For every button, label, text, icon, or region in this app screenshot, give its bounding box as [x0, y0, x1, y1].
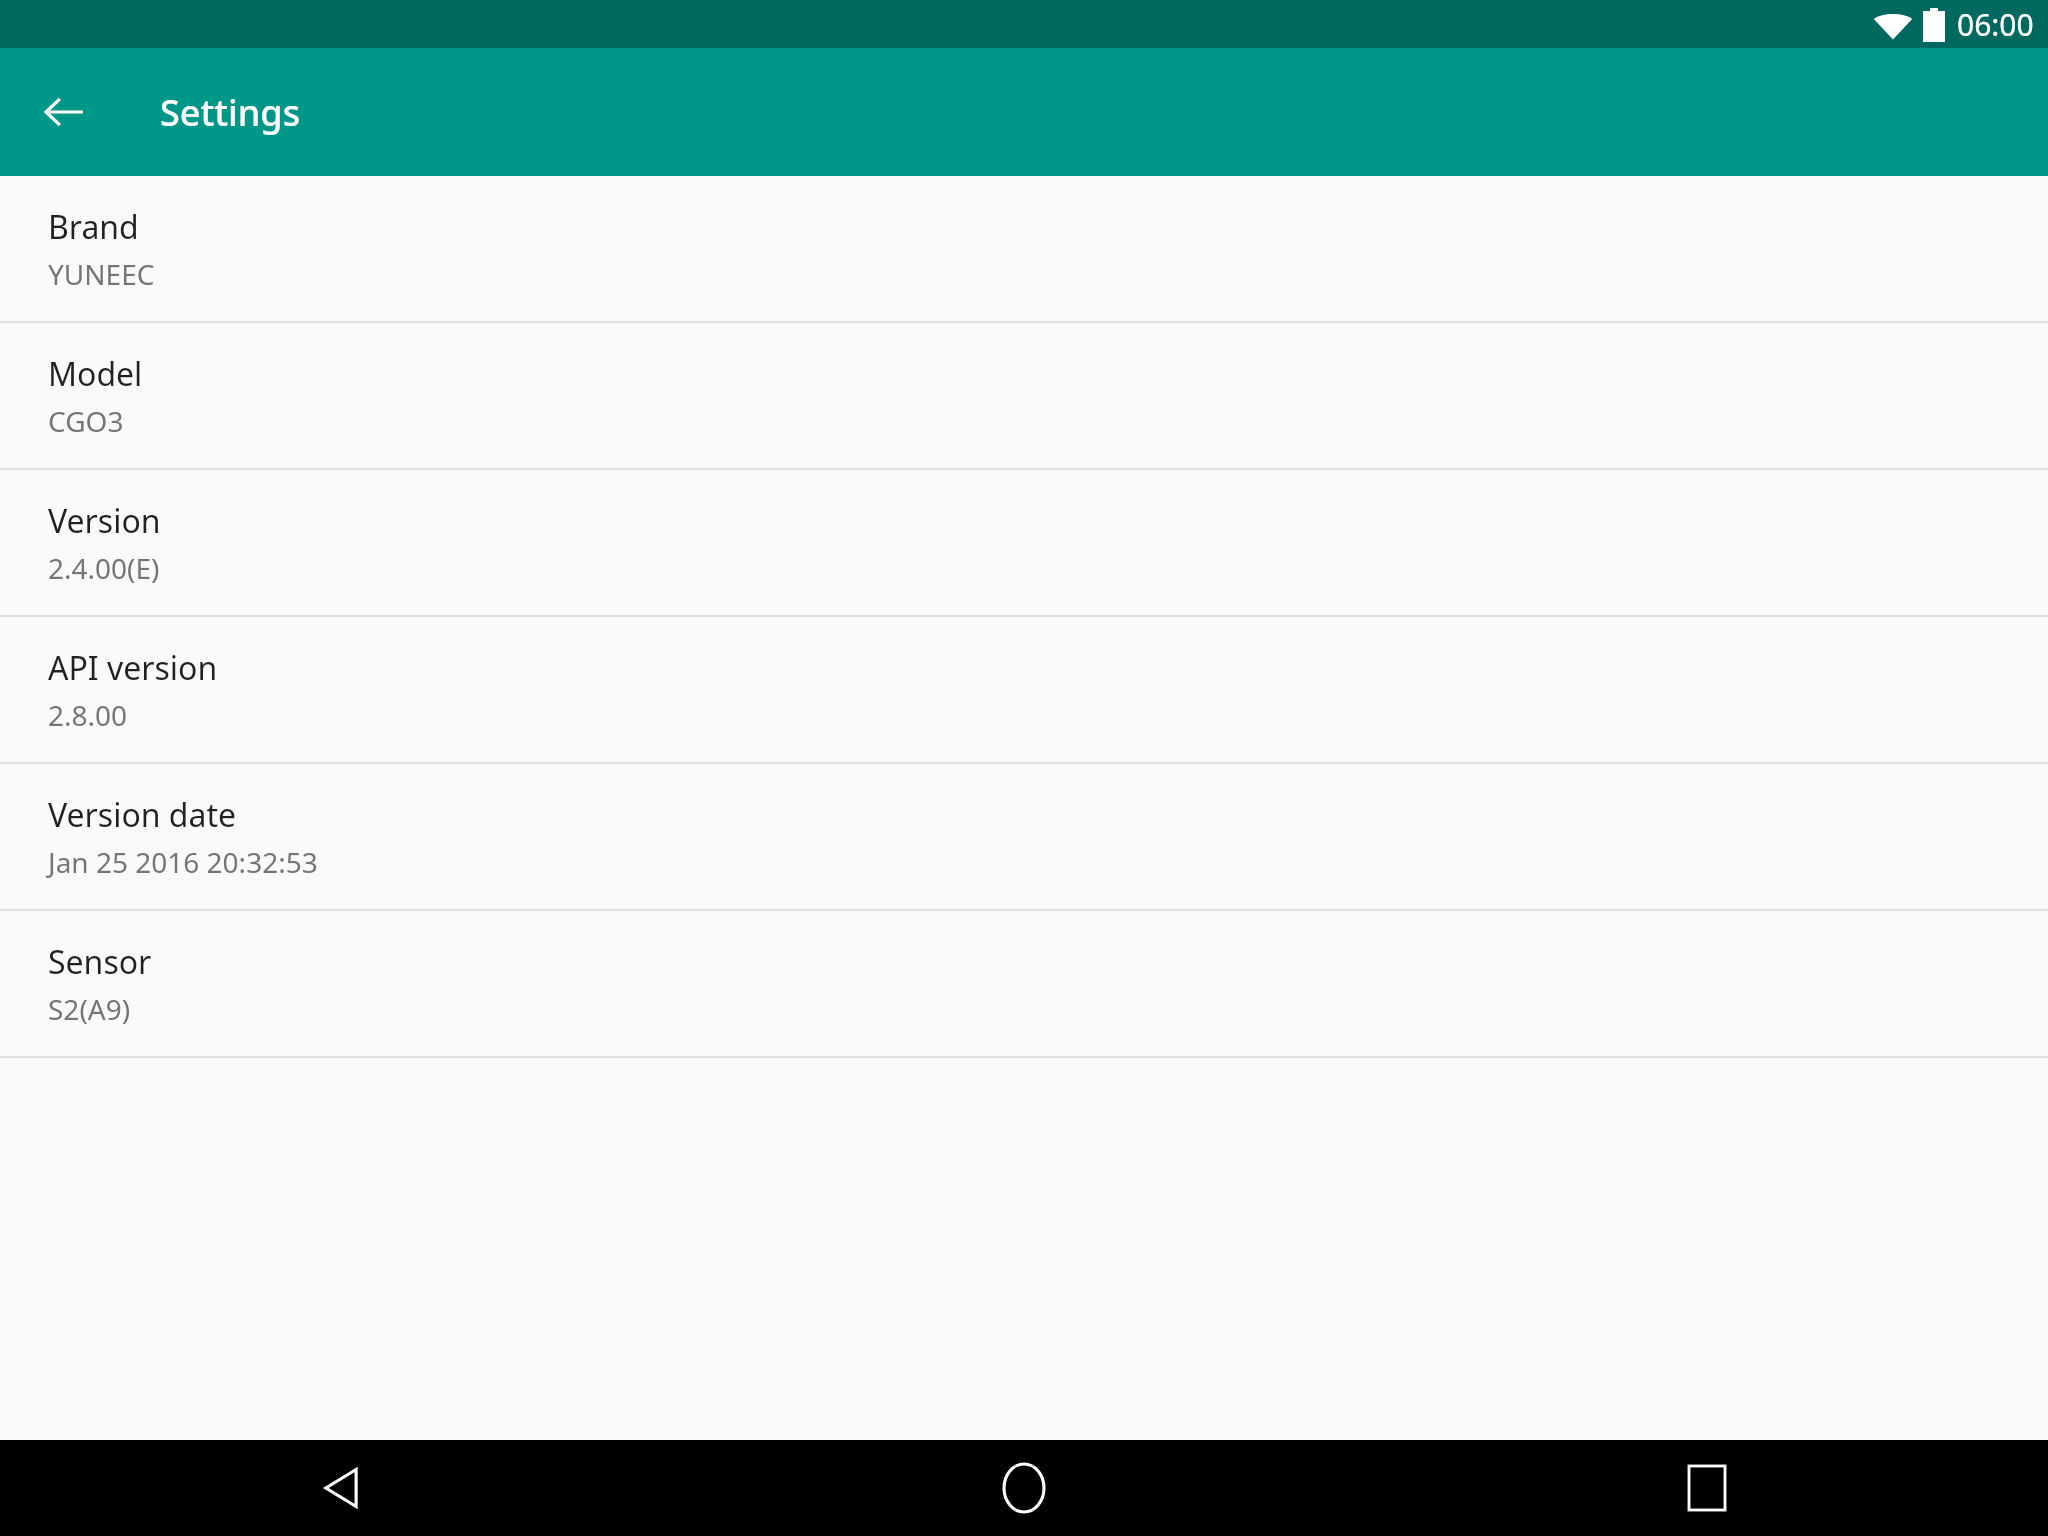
staticText: Version: [48, 499, 161, 543]
staticText: API version: [48, 646, 218, 690]
staticText: S2(A9): [48, 990, 131, 1028]
button[interactable]: Home: [682, 1440, 1365, 1536]
button[interactable]: Version date: [0, 764, 2048, 909]
staticText: CGO3: [48, 402, 124, 440]
button[interactable]: Model: [0, 323, 2048, 468]
staticText: Version date: [48, 793, 237, 837]
staticText: Settings: [160, 88, 301, 137]
staticText: Brand: [48, 205, 139, 249]
button[interactable]: Version: [0, 470, 2048, 615]
button[interactable]: API version: [0, 617, 2048, 762]
staticText: 2.4.00(E): [48, 549, 160, 587]
staticText: 2.8.00: [48, 696, 128, 734]
staticText: 06:00: [1957, 4, 2034, 45]
staticText: Sensor: [48, 940, 152, 984]
button[interactable]: Recent apps: [1365, 1440, 2048, 1536]
staticText: YUNEEC: [48, 255, 155, 293]
staticText: Model: [48, 352, 143, 396]
button[interactable]: Sensor: [0, 911, 2048, 1056]
button[interactable]: Back: [0, 1440, 682, 1536]
staticText: Jan 25 2016 20:32:53: [48, 843, 318, 881]
button[interactable]: Back: [26, 74, 102, 150]
button[interactable]: Brand: [0, 176, 2048, 321]
